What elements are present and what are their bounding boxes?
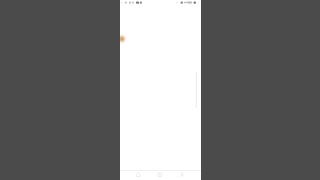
button[interactable]: Home [120, 169, 147, 180]
button[interactable]: Explore [147, 169, 174, 180]
button[interactable]: Profile [174, 169, 201, 180]
